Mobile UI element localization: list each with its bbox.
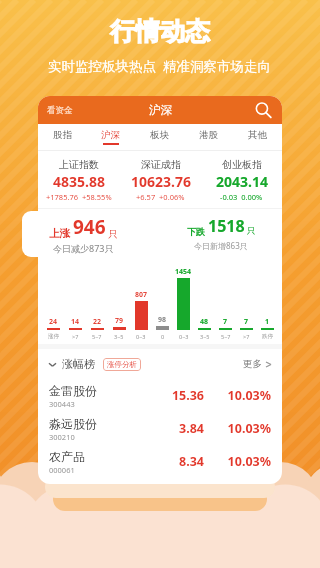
staticText: 1454 [175,267,192,277]
staticText: 79 [115,316,124,326]
staticText: 今日新增863只 [194,240,248,251]
staticText: 807 [135,290,148,300]
staticText: 946 [73,214,106,240]
staticText: 10.03% [204,453,271,470]
button[interactable]: 港股 [184,124,233,150]
staticText: 更多 [243,358,262,370]
staticText: 22 [93,317,102,327]
button[interactable]: 上涨 [22,211,145,257]
staticText: 7 [223,317,228,327]
staticText: 看资金 [47,105,73,116]
staticText: 跌停 [262,333,273,340]
staticText: 10.03% [204,420,271,437]
staticText: 0 [161,333,165,340]
staticText: 行情动态 [110,16,210,47]
button[interactable]: 其他 [233,124,282,150]
staticText: 只 [247,226,256,237]
staticText: 创业板指 [222,158,262,171]
staticText: 5~7 [221,333,231,340]
staticText: 0~3 [136,333,146,340]
staticText: 其他 [248,129,267,141]
button[interactable]: 农产品 [38,445,282,478]
staticText: 实时监控板块热点 精准洞察市场走向 [48,57,272,75]
staticText: 涨幅榜 [62,357,95,371]
staticText: >7 [72,333,79,340]
staticText: 淼远股份 [49,416,97,431]
button[interactable]: Search [254,101,272,119]
staticText: 上涨 [49,227,70,240]
staticText: +6.57 +0.06% [136,192,185,202]
staticText: 14 [71,317,80,327]
staticText: 8.34 [137,453,204,470]
staticText: 5~7 [92,333,102,340]
staticText: 000061 [49,465,75,475]
staticText: 下跌 [187,226,205,237]
staticText: 1 [265,317,270,327]
button[interactable]: 看资金 [47,105,73,116]
button[interactable]: 股指 [38,124,86,150]
staticText: 沪深 [149,103,172,117]
staticText: -0.03 0.00% [220,192,263,202]
staticText: 2043.14 [216,172,268,191]
staticText: 上证指数 [59,158,99,171]
staticText: 300443 [49,399,75,409]
button[interactable]: 沪深 [86,124,135,150]
staticText: 只 [108,228,118,240]
staticText: 3.84 [137,420,204,437]
staticText: 24 [49,317,58,327]
staticText: 沪深 [101,129,120,141]
staticText: 板块 [150,129,169,141]
staticText: 10.03% [204,387,271,404]
staticText: +1785.76 +58.55% [46,192,112,202]
button[interactable]: 淼远股份 [38,412,282,445]
staticText: 1518 [208,215,245,237]
staticText: 48 [200,317,209,327]
staticText: 金雷股份 [49,383,97,398]
staticText: 今日减少873只 [53,242,114,254]
staticText: 农产品 [49,449,85,464]
button[interactable]: 板块 [135,124,184,150]
staticText: >7 [243,333,250,340]
staticText: 涨停 [48,333,59,340]
button[interactable]: 下跌 [160,209,282,256]
staticText: 7 [244,317,249,327]
staticText: 涨停分析 [107,360,137,369]
staticText: 10623.76 [131,172,191,191]
button[interactable]: 金雷股份 [38,379,282,412]
staticText: 深证成指 [141,158,181,171]
staticText: 港股 [199,129,218,141]
staticText: 股指 [53,129,72,141]
staticText: 300210 [49,432,75,442]
button[interactable]: 涨停分析 [103,358,141,371]
staticText: 3~5 [114,333,124,340]
button[interactable]: 涨幅榜 [38,349,282,379]
staticText: 98 [158,315,167,325]
staticText: 15.36 [137,387,204,404]
staticText: 3~5 [200,333,210,340]
staticText: 0~3 [179,333,189,340]
staticText: 4835.88 [53,172,105,191]
